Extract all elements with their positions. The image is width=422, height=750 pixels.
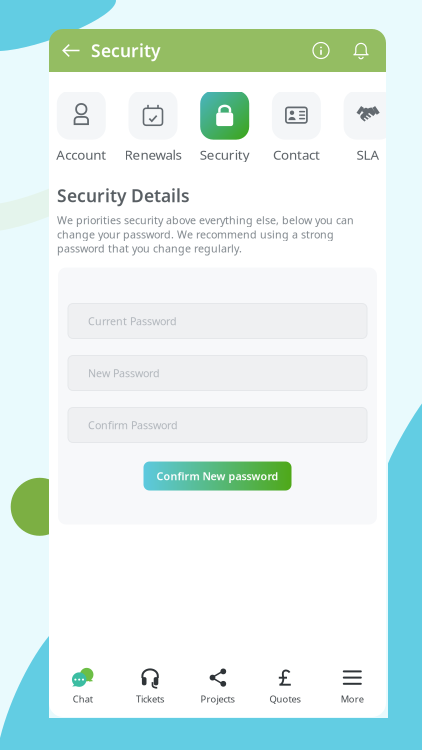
button[interactable]: Account bbox=[45, 91, 117, 163]
button[interactable]: Back bbox=[58, 34, 84, 66]
staticText: Tickets bbox=[136, 693, 164, 705]
staticText: We priorities security above everything … bbox=[57, 213, 354, 255]
button[interactable]: Notifications bbox=[348, 37, 374, 63]
staticText: Renewals bbox=[124, 146, 181, 163]
staticText: Security bbox=[91, 39, 160, 62]
button[interactable]: SLA bbox=[332, 91, 404, 163]
button[interactable]: Tickets bbox=[116, 667, 184, 705]
button[interactable]: Projects bbox=[184, 667, 251, 705]
button[interactable]: Confirm New password bbox=[143, 461, 291, 490]
staticText: Confirm New password bbox=[156, 469, 278, 483]
staticText: Quotes bbox=[269, 693, 300, 705]
button[interactable]: Quotes bbox=[251, 667, 319, 705]
button[interactable]: Security bbox=[189, 91, 261, 163]
staticText: Projects bbox=[200, 693, 234, 705]
button[interactable]: Contact bbox=[261, 91, 332, 163]
staticText: Security bbox=[200, 146, 250, 163]
staticText: Security Details bbox=[57, 184, 190, 207]
staticText: Current Password bbox=[88, 314, 177, 328]
staticText: Chat bbox=[73, 693, 93, 705]
button[interactable]: More bbox=[319, 667, 386, 705]
staticText: Confirm Password bbox=[88, 418, 178, 432]
staticText: Account bbox=[56, 146, 106, 163]
staticText: New Password bbox=[88, 366, 160, 380]
button[interactable]: Information bbox=[308, 37, 334, 63]
button[interactable]: Renewals bbox=[117, 91, 189, 163]
staticText: SLA bbox=[357, 146, 380, 163]
button[interactable]: Chat bbox=[49, 667, 116, 705]
staticText: Contact bbox=[273, 146, 320, 163]
staticText: More bbox=[341, 693, 364, 705]
